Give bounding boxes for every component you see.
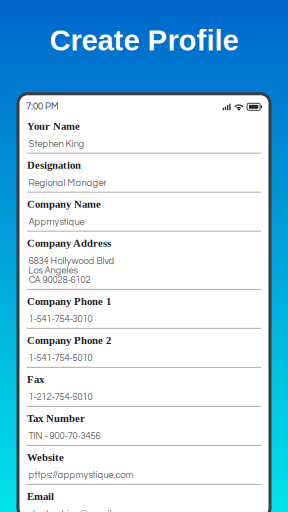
staticText: Fax	[27, 374, 44, 385]
staticText: 1-541-754-5010	[28, 353, 92, 363]
staticText: Website	[27, 452, 64, 463]
staticText: Los Angeles	[28, 266, 77, 275]
button[interactable]: Company Name	[27, 198, 261, 232]
staticText: stephenking@gmail.com	[28, 509, 131, 512]
staticText: 1-541-754-3010	[28, 314, 92, 324]
staticText: Tax Number	[27, 413, 85, 424]
staticText: pttps://appmystique.com	[28, 470, 133, 480]
button[interactable]: Company Address	[27, 237, 261, 290]
button[interactable]: Tax Number	[27, 412, 261, 446]
staticText: 6834 Hollywood Blvd	[28, 256, 114, 266]
staticText: Regional Manager	[28, 178, 106, 188]
button[interactable]: Company Phone 2	[27, 334, 261, 368]
button[interactable]: Fax	[27, 373, 261, 407]
staticText: Company Phone 1	[27, 296, 111, 307]
staticText: TIN - 900-70-3456	[28, 431, 100, 441]
staticText: Company Address	[27, 237, 111, 249]
staticText: Company Name	[27, 198, 101, 210]
staticText: Appmystique	[28, 217, 84, 227]
staticText: Stephen King	[28, 139, 84, 149]
staticText: Company Phone 2	[27, 335, 111, 346]
staticText: Designation	[27, 159, 81, 171]
staticText: CA 90028-6102	[28, 275, 90, 285]
staticText: 7:00 PM	[26, 102, 59, 112]
staticText: 1-212-754-5010	[28, 392, 92, 402]
button[interactable]: Designation	[27, 159, 261, 193]
staticText: Create Profile	[49, 24, 238, 57]
button[interactable]: Website	[27, 451, 261, 485]
staticText: Your Name	[27, 120, 80, 132]
button[interactable]: Company Phone 1	[27, 295, 261, 329]
button[interactable]: Email	[27, 490, 261, 512]
staticText: Email	[27, 491, 54, 502]
button[interactable]: Your Name	[27, 120, 261, 154]
